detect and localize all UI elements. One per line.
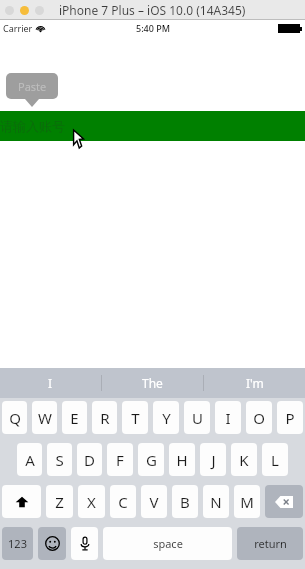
button[interactable]: Q xyxy=(2,401,27,434)
staticText: B xyxy=(180,492,190,512)
staticText: C xyxy=(118,492,128,512)
staticText: 123 xyxy=(8,536,27,551)
staticText: return xyxy=(254,536,287,551)
button[interactable]: C xyxy=(110,485,136,518)
staticText: iPhone 7 Plus – iOS 10.0 (14A345) xyxy=(59,2,246,18)
button[interactable]: Backspace xyxy=(265,485,303,518)
staticText: I xyxy=(48,375,53,391)
staticText: J xyxy=(211,450,216,470)
staticText: A xyxy=(25,450,35,470)
staticText: Q xyxy=(9,408,21,428)
button[interactable]: 请输入账号 xyxy=(0,111,305,141)
button[interactable]: Z xyxy=(46,485,73,518)
button[interactable]: O xyxy=(246,401,272,434)
staticText: 请输入账号 xyxy=(0,118,65,134)
button[interactable]: I xyxy=(0,368,101,398)
button[interactable]: W xyxy=(32,401,57,434)
staticText: space xyxy=(153,536,183,551)
staticText: I'm xyxy=(246,375,264,391)
button[interactable]: M xyxy=(234,485,260,518)
button[interactable]: F xyxy=(107,443,133,476)
button[interactable]: X xyxy=(78,485,105,518)
button[interactable]: The xyxy=(102,368,203,398)
button[interactable]: H xyxy=(169,443,195,476)
staticText: V xyxy=(149,492,159,512)
button[interactable]: U xyxy=(184,401,210,434)
button[interactable]: 123 xyxy=(2,527,33,560)
button[interactable]: T xyxy=(122,401,148,434)
staticText: I xyxy=(225,408,231,428)
button[interactable]: V xyxy=(141,485,167,518)
button[interactable]: Window control xyxy=(35,6,44,15)
button[interactable]: S xyxy=(47,443,72,476)
staticText: T xyxy=(131,408,140,428)
staticText: S xyxy=(55,450,64,470)
staticText: E xyxy=(70,408,79,428)
staticText: U xyxy=(192,408,203,428)
button[interactable]: Y xyxy=(153,401,179,434)
staticText: Paste xyxy=(18,79,47,94)
button[interactable]: space xyxy=(103,527,232,560)
button[interactable]: N xyxy=(203,485,229,518)
button[interactable]: K xyxy=(231,443,257,476)
button[interactable]: R xyxy=(92,401,117,434)
staticText: O xyxy=(253,408,265,428)
button[interactable]: D xyxy=(77,443,102,476)
staticText: K xyxy=(239,450,249,470)
button[interactable]: G xyxy=(138,443,164,476)
staticText: R xyxy=(100,408,110,428)
staticText: X xyxy=(87,492,96,512)
staticText: H xyxy=(176,450,188,470)
staticText: Carrier xyxy=(3,22,33,34)
staticText: M xyxy=(240,492,254,512)
staticText: N xyxy=(210,492,222,512)
button[interactable]: P xyxy=(277,401,303,434)
button[interactable]: Paste xyxy=(6,73,58,99)
button[interactable]: I'm xyxy=(204,368,305,398)
staticText: Y xyxy=(162,408,171,428)
button[interactable]: Shift xyxy=(2,485,41,518)
button[interactable]: Window control xyxy=(20,6,29,15)
button[interactable]: J xyxy=(200,443,226,476)
button[interactable]: I xyxy=(215,401,241,434)
button[interactable]: L xyxy=(262,443,288,476)
button[interactable]: return xyxy=(237,527,303,560)
staticText: L xyxy=(271,450,279,470)
button[interactable]: A xyxy=(17,443,42,476)
button[interactable]: Window control xyxy=(5,6,14,15)
staticText: The xyxy=(142,375,163,391)
staticText: P xyxy=(285,408,295,428)
button[interactable]: Emoji keyboard xyxy=(38,527,66,560)
staticText: Z xyxy=(55,492,64,512)
staticText: D xyxy=(84,450,95,470)
button[interactable]: E xyxy=(62,401,87,434)
button[interactable]: B xyxy=(172,485,198,518)
staticText: F xyxy=(116,450,124,470)
staticText: 5:40 PM xyxy=(136,22,170,34)
button[interactable]: Dictation xyxy=(71,527,98,560)
staticText: G xyxy=(146,450,157,470)
staticText: W xyxy=(38,408,52,428)
